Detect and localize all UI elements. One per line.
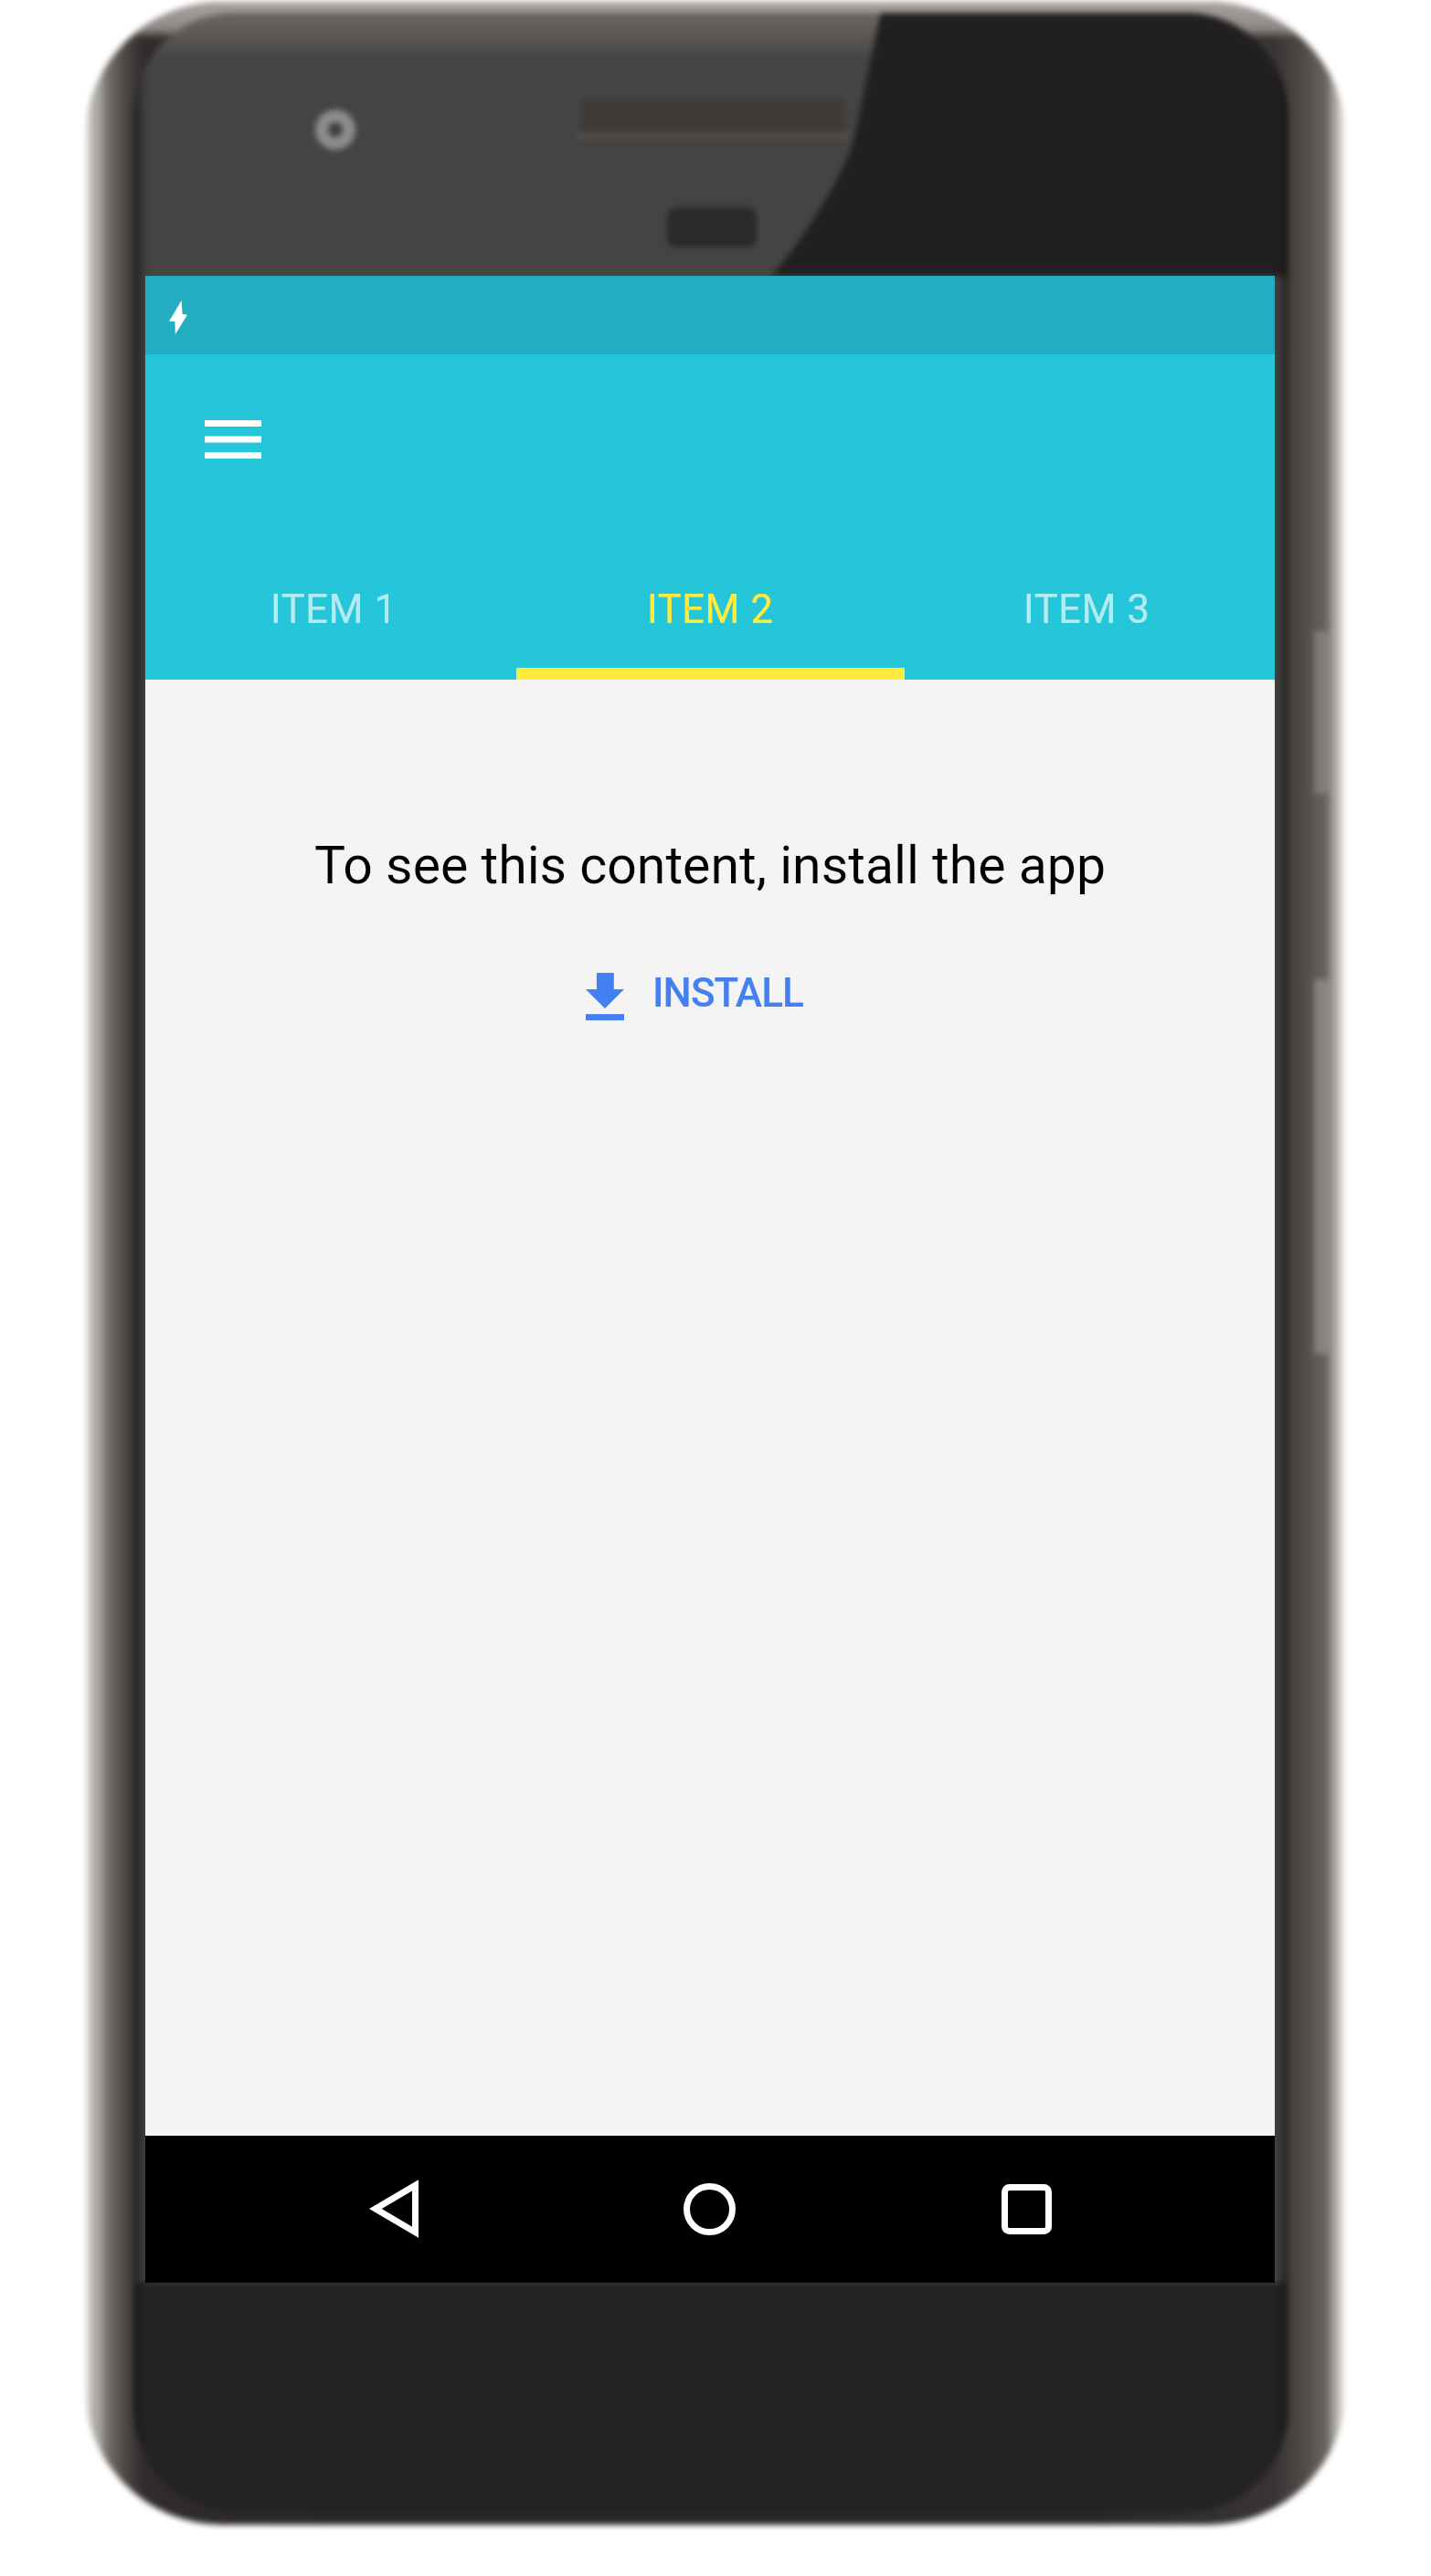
button[interactable]: INSTALL xyxy=(586,958,804,1035)
staticText: INSTALL xyxy=(652,969,804,1017)
button[interactable]: Back xyxy=(347,2161,442,2256)
staticText: ITEM 2 xyxy=(647,586,774,633)
button[interactable]: ITEM 1 xyxy=(145,565,522,680)
button[interactable]: ITEM 3 xyxy=(898,565,1275,680)
staticText: To see this content, install the app xyxy=(145,835,1275,896)
staticText: ITEM 1 xyxy=(270,586,397,633)
staticText: ITEM 3 xyxy=(1023,586,1150,633)
button[interactable]: Open navigation drawer xyxy=(185,392,281,487)
button[interactable]: Home xyxy=(662,2161,757,2256)
button[interactable]: ITEM 2 xyxy=(522,565,898,680)
button[interactable]: Recent apps xyxy=(979,2161,1074,2256)
